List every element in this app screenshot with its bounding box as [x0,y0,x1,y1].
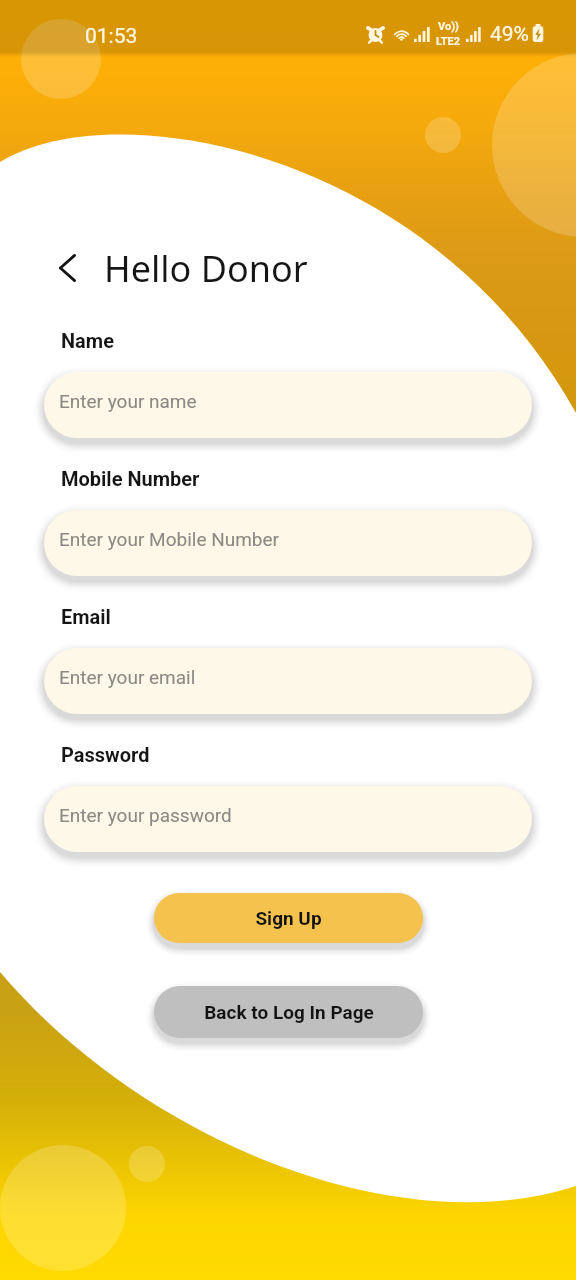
button[interactable]: Back [50,246,84,290]
button[interactable]: Enter your name [44,372,532,438]
staticText: Hello Donor [104,244,308,293]
button[interactable]: Back to Log In Page [154,986,423,1038]
staticText: Mobile Number [61,467,200,490]
staticText: Enter your password [59,804,232,826]
button[interactable]: Enter your Mobile Number [44,510,532,576]
staticText: Enter your email [59,666,196,688]
staticText: Vo)) [438,20,459,33]
staticText: LTE2 [436,35,461,48]
button[interactable]: Sign Up [154,893,423,943]
button[interactable]: Enter your email [44,648,532,714]
staticText: Enter your name [59,390,197,412]
staticText: Sign Up [255,907,322,929]
staticText: Enter your Mobile Number [59,528,280,550]
staticText: Back to Log In Page [204,1001,374,1023]
staticText: Password [61,743,150,766]
button[interactable]: Enter your password [44,786,532,852]
staticText: Email [61,605,111,628]
staticText: Name [61,329,114,352]
staticText: 01:53 [85,24,138,49]
staticText: 49% [490,22,529,42]
